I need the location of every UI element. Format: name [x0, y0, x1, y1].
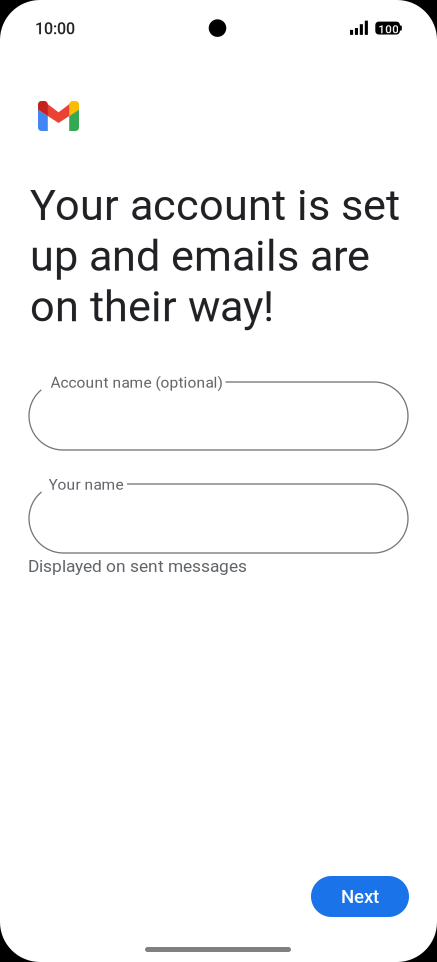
staticText: 10:00: [35, 19, 75, 38]
button[interactable]: Your name: [29, 484, 408, 553]
button[interactable]: Account name (optional): [29, 382, 408, 450]
staticText: Your account is set up and emails are on…: [30, 180, 400, 332]
button[interactable]: Next: [311, 876, 409, 917]
staticText: Displayed on sent messages: [28, 556, 247, 576]
staticText: Account name (optional): [50, 373, 222, 392]
staticText: Your name: [48, 475, 123, 494]
staticText: 100: [378, 23, 399, 36]
staticText: Next: [341, 886, 379, 907]
